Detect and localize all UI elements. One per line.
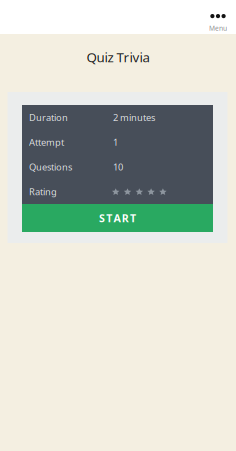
staticText: Attempt — [29, 136, 64, 148]
staticText: 10 — [113, 161, 123, 173]
staticText: T — [130, 211, 136, 225]
staticText: 1 — [113, 136, 118, 148]
staticText: A — [113, 211, 120, 225]
staticText: S — [99, 211, 105, 225]
staticText: R — [122, 211, 129, 225]
staticText: 2 minutes — [113, 111, 155, 124]
button[interactable]: S — [22, 204, 213, 232]
staticText: Menu — [209, 24, 227, 33]
staticText: T — [106, 211, 112, 225]
staticText: Questions — [29, 161, 72, 173]
staticText: Quiz Trivia — [86, 48, 149, 66]
button[interactable]: Menu — [196, 0, 236, 37]
staticText: Rating — [29, 185, 57, 198]
staticText: Duration — [29, 111, 68, 124]
